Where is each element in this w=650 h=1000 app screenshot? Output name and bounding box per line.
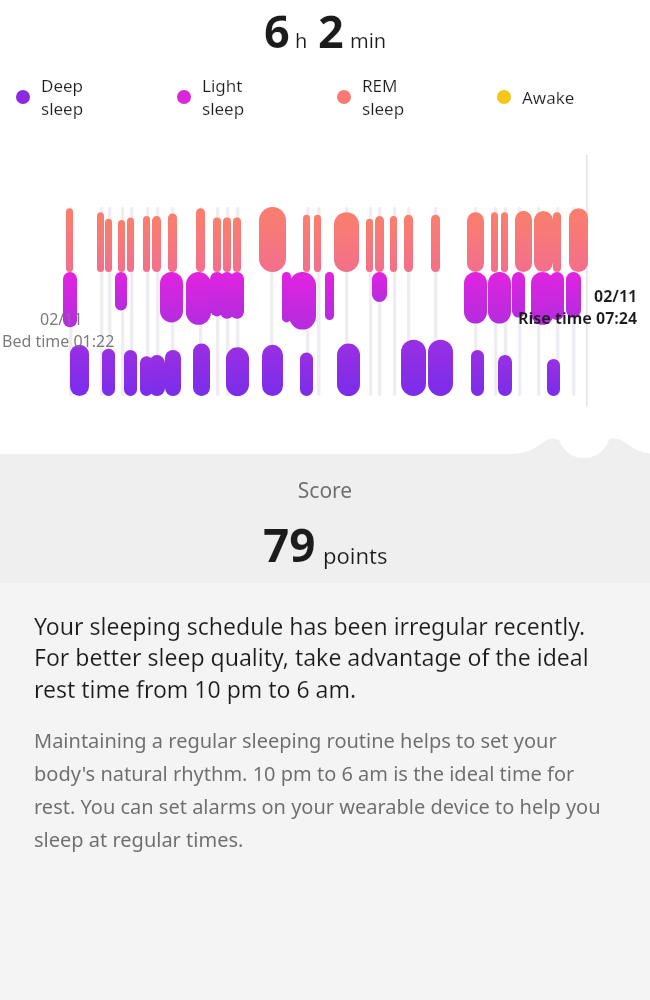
staticText: h xyxy=(295,27,308,54)
staticText: min xyxy=(350,27,387,54)
staticText: sleep xyxy=(362,97,405,120)
staticText: points xyxy=(323,540,388,570)
button[interactable]: Awake xyxy=(481,72,650,122)
staticText: Your sleeping schedule has been irregula… xyxy=(34,610,616,705)
staticText: REM xyxy=(362,74,398,97)
staticText: 79 xyxy=(263,513,316,576)
button[interactable]: Deep xyxy=(0,72,161,122)
staticText: sleep xyxy=(41,97,84,120)
button[interactable]: Sleep details xyxy=(558,406,610,458)
staticText: sleep xyxy=(202,97,245,120)
staticText: Rise time 07:24 xyxy=(518,307,638,329)
staticText: Light xyxy=(202,74,243,97)
staticText: Score xyxy=(0,476,650,505)
staticText: 02/11 xyxy=(40,308,83,330)
staticText: 02/11 xyxy=(594,285,638,307)
staticText: 2 xyxy=(318,0,344,61)
staticText: Maintaining a regular sleeping routine h… xyxy=(34,727,616,853)
staticText: Deep xyxy=(41,74,84,97)
button[interactable]: REM xyxy=(321,72,481,122)
staticText: Awake xyxy=(522,86,575,109)
staticText: 6 xyxy=(264,0,290,61)
button[interactable]: Light xyxy=(161,72,321,122)
staticText: Bed time 01:22 xyxy=(2,330,115,352)
